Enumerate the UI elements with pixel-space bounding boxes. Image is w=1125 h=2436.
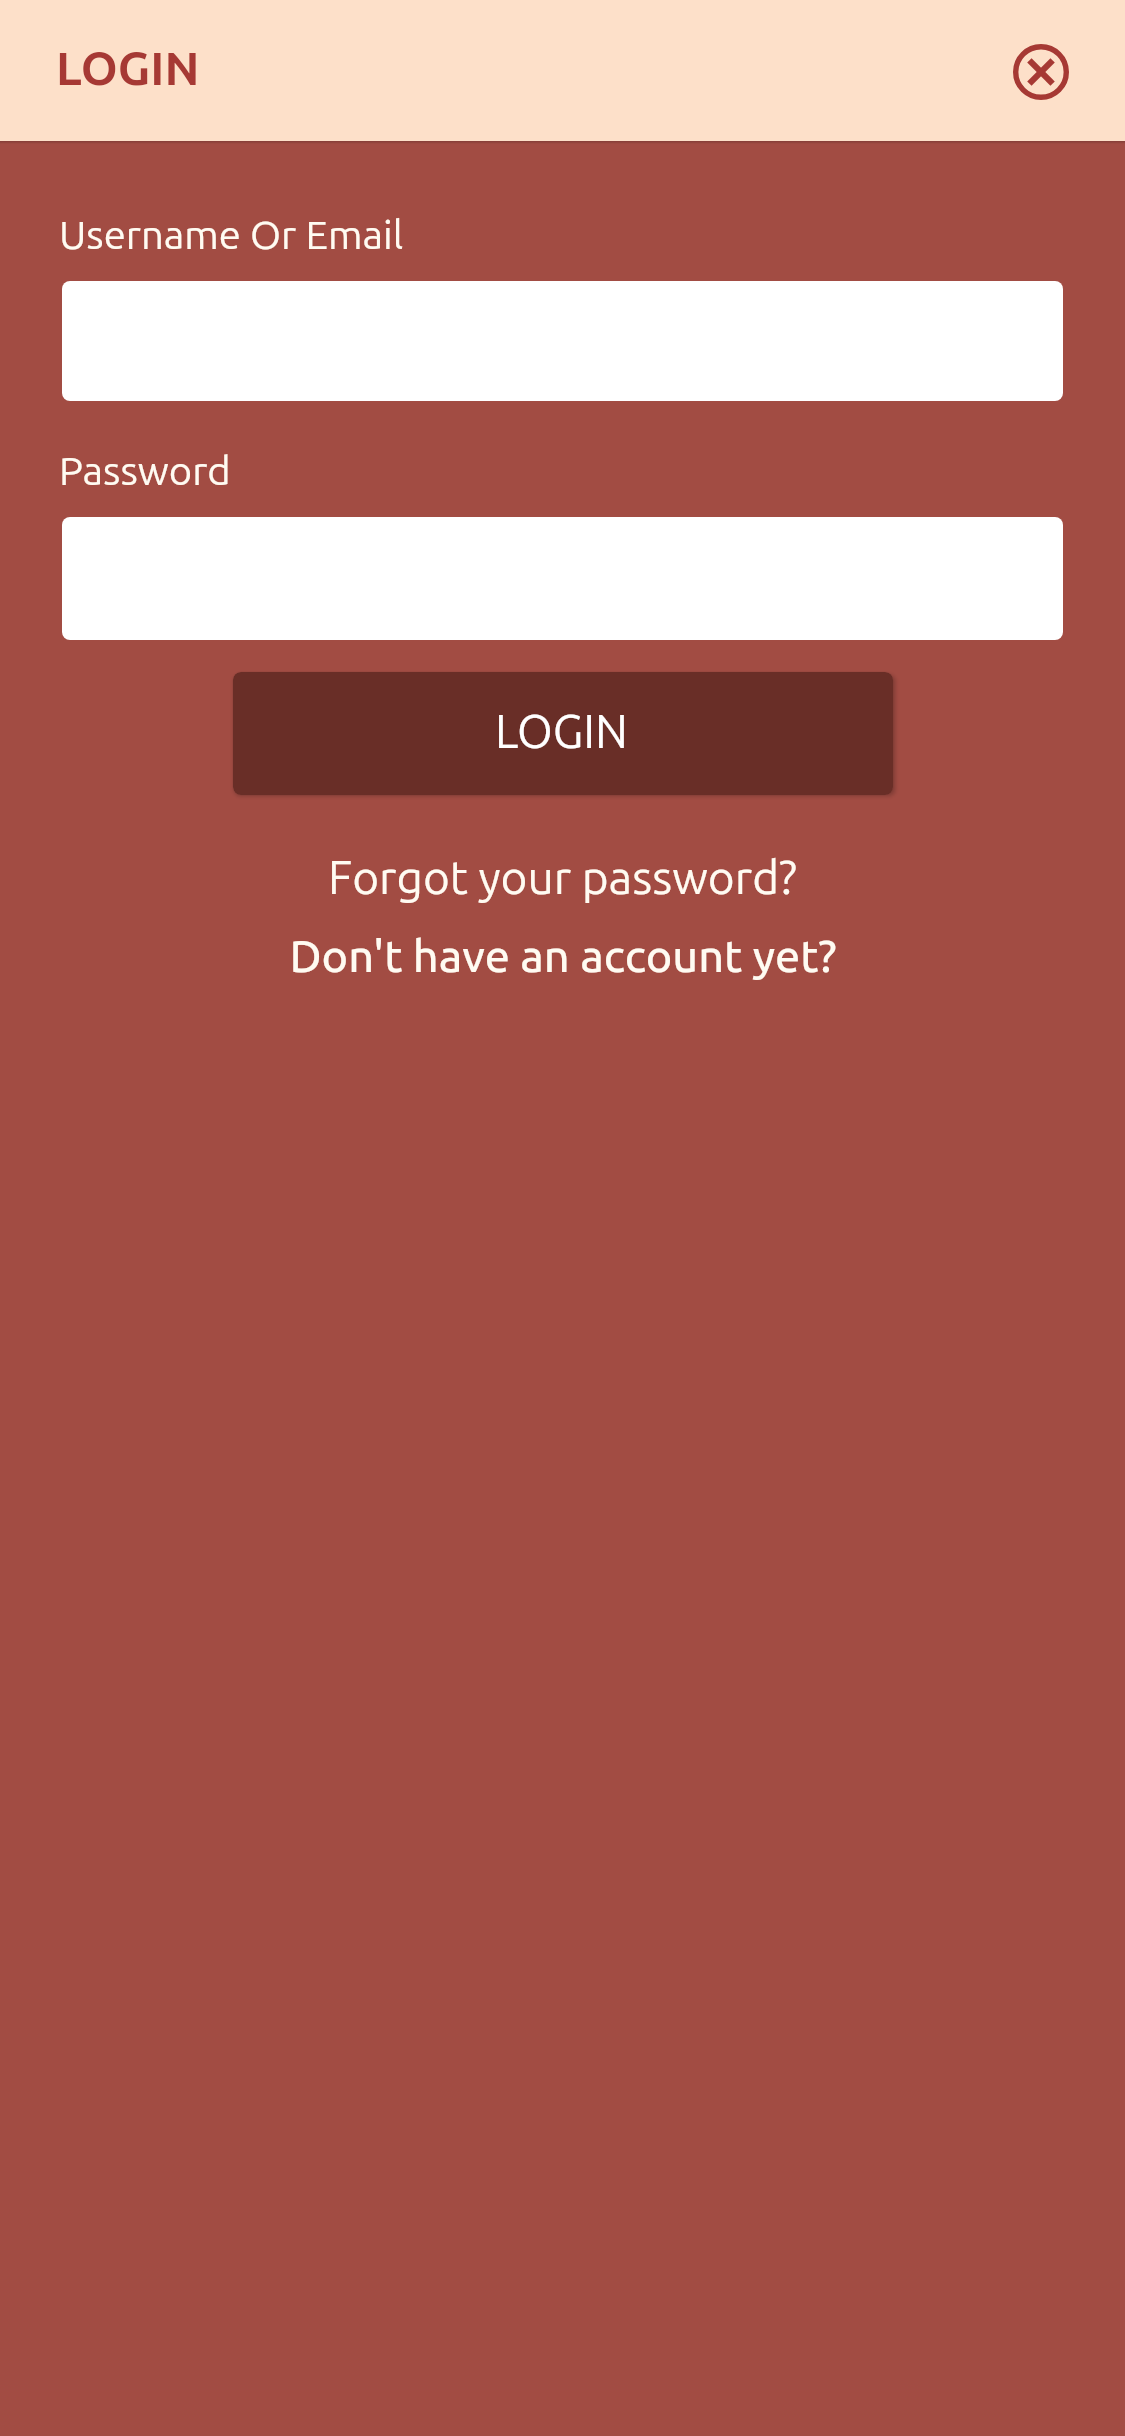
button[interactable]: Close: [1012, 43, 1070, 101]
button[interactable]: [62, 281, 1063, 401]
staticText: LOGIN: [56, 41, 200, 94]
staticText: Forgot your password?: [328, 851, 797, 903]
staticText: Password: [59, 448, 231, 493]
button[interactable]: Don't have an account yet?: [289, 930, 837, 980]
button[interactable]: LOGIN: [233, 672, 893, 795]
staticText: LOGIN: [495, 705, 628, 757]
button[interactable]: Forgot your password?: [328, 851, 797, 903]
staticText: Username Or Email: [59, 212, 404, 257]
button[interactable]: [62, 517, 1063, 640]
staticText: Don't have an account yet?: [289, 930, 837, 980]
